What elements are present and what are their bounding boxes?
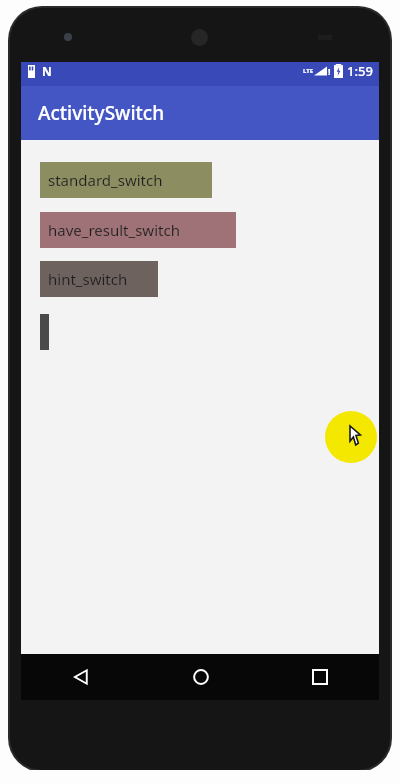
staticText: ActivitySwitch (38, 100, 165, 126)
staticText: LTE (303, 67, 314, 75)
staticText: N (42, 63, 52, 79)
button[interactable]: hint_switch (40, 261, 158, 297)
button[interactable]: standard_switch (40, 162, 212, 198)
button[interactable]: Recent apps (260, 654, 379, 700)
staticText: ! (328, 65, 331, 77)
button[interactable]: have_result_switch (40, 212, 236, 248)
button[interactable]: Back (21, 654, 141, 700)
button[interactable]: Home (141, 654, 260, 700)
staticText: hint_switch (48, 269, 128, 289)
staticText: 1:59 (347, 62, 373, 80)
staticText: standard_switch (48, 170, 163, 190)
staticText: have_result_switch (48, 220, 180, 240)
